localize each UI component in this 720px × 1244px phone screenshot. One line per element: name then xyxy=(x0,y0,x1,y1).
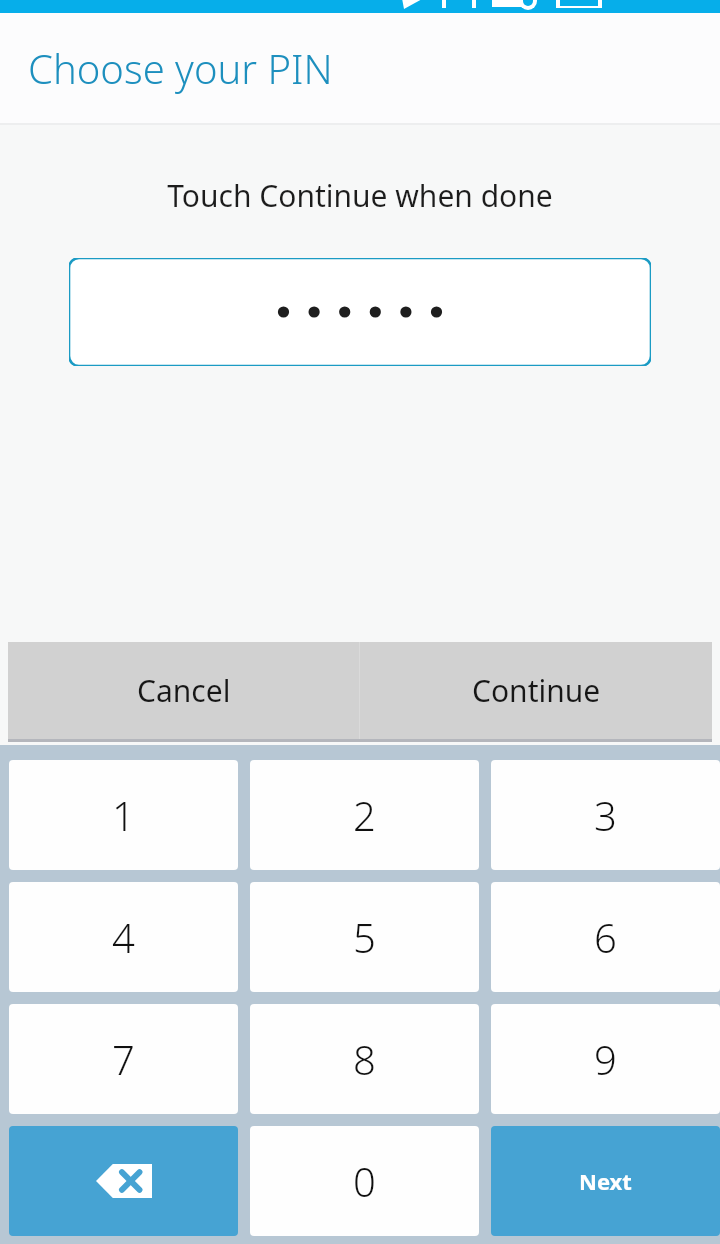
button[interactable]: 6 xyxy=(491,882,720,992)
staticText: 2 xyxy=(353,788,376,842)
staticText: 0 xyxy=(353,1154,376,1208)
button[interactable]: 7 xyxy=(9,1004,238,1114)
button[interactable]: 3 xyxy=(491,760,720,870)
staticText: 7 xyxy=(112,1032,135,1086)
staticText: Touch Continue when done xyxy=(167,175,553,216)
staticText: Choose your PIN xyxy=(28,41,333,95)
button[interactable]: 1 xyxy=(9,760,238,870)
staticText: 3 xyxy=(594,788,617,842)
button[interactable] xyxy=(69,258,651,366)
button[interactable]: Cancel xyxy=(8,642,359,739)
staticText: 9 xyxy=(594,1032,617,1086)
button[interactable]: Next xyxy=(491,1126,720,1236)
staticText: 4 xyxy=(112,910,135,964)
button[interactable]: 5 xyxy=(250,882,479,992)
button[interactable]: 9 xyxy=(491,1004,720,1114)
staticText: Next xyxy=(579,1166,632,1196)
staticText: 5 xyxy=(353,910,376,964)
button[interactable]: Delete xyxy=(9,1126,238,1236)
staticText: Continue xyxy=(472,670,601,711)
button[interactable]: 0 xyxy=(250,1126,479,1236)
button[interactable]: 8 xyxy=(250,1004,479,1114)
button[interactable]: 4 xyxy=(9,882,238,992)
staticText: Cancel xyxy=(137,670,231,711)
button[interactable]: Continue xyxy=(360,642,712,739)
staticText: 8 xyxy=(353,1032,376,1086)
staticText: 1 xyxy=(112,788,135,842)
button[interactable]: 2 xyxy=(250,760,479,870)
staticText: 6 xyxy=(594,910,617,964)
